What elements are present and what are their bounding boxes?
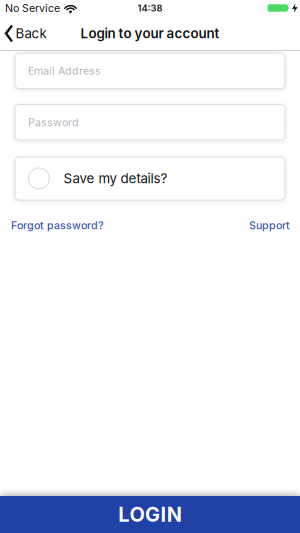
staticText: Password [28, 116, 79, 129]
button[interactable]: Back [0, 25, 46, 42]
staticText: Email Address [28, 64, 101, 77]
staticText: No Service [5, 2, 60, 14]
button[interactable]: Save my details? [0, 157, 300, 200]
staticText: 14:38 [137, 2, 162, 13]
staticText: Login to your account [80, 26, 219, 41]
button[interactable]: Support [249, 219, 290, 232]
button[interactable]: LOGIN [0, 496, 300, 533]
staticText: LOGIN [118, 503, 182, 526]
staticText: Support [249, 219, 290, 232]
staticText: Forgot password? [11, 219, 104, 232]
staticText: Save my details? [63, 171, 167, 186]
button[interactable]: Forgot password? [11, 219, 104, 232]
staticText: Back [15, 26, 46, 41]
